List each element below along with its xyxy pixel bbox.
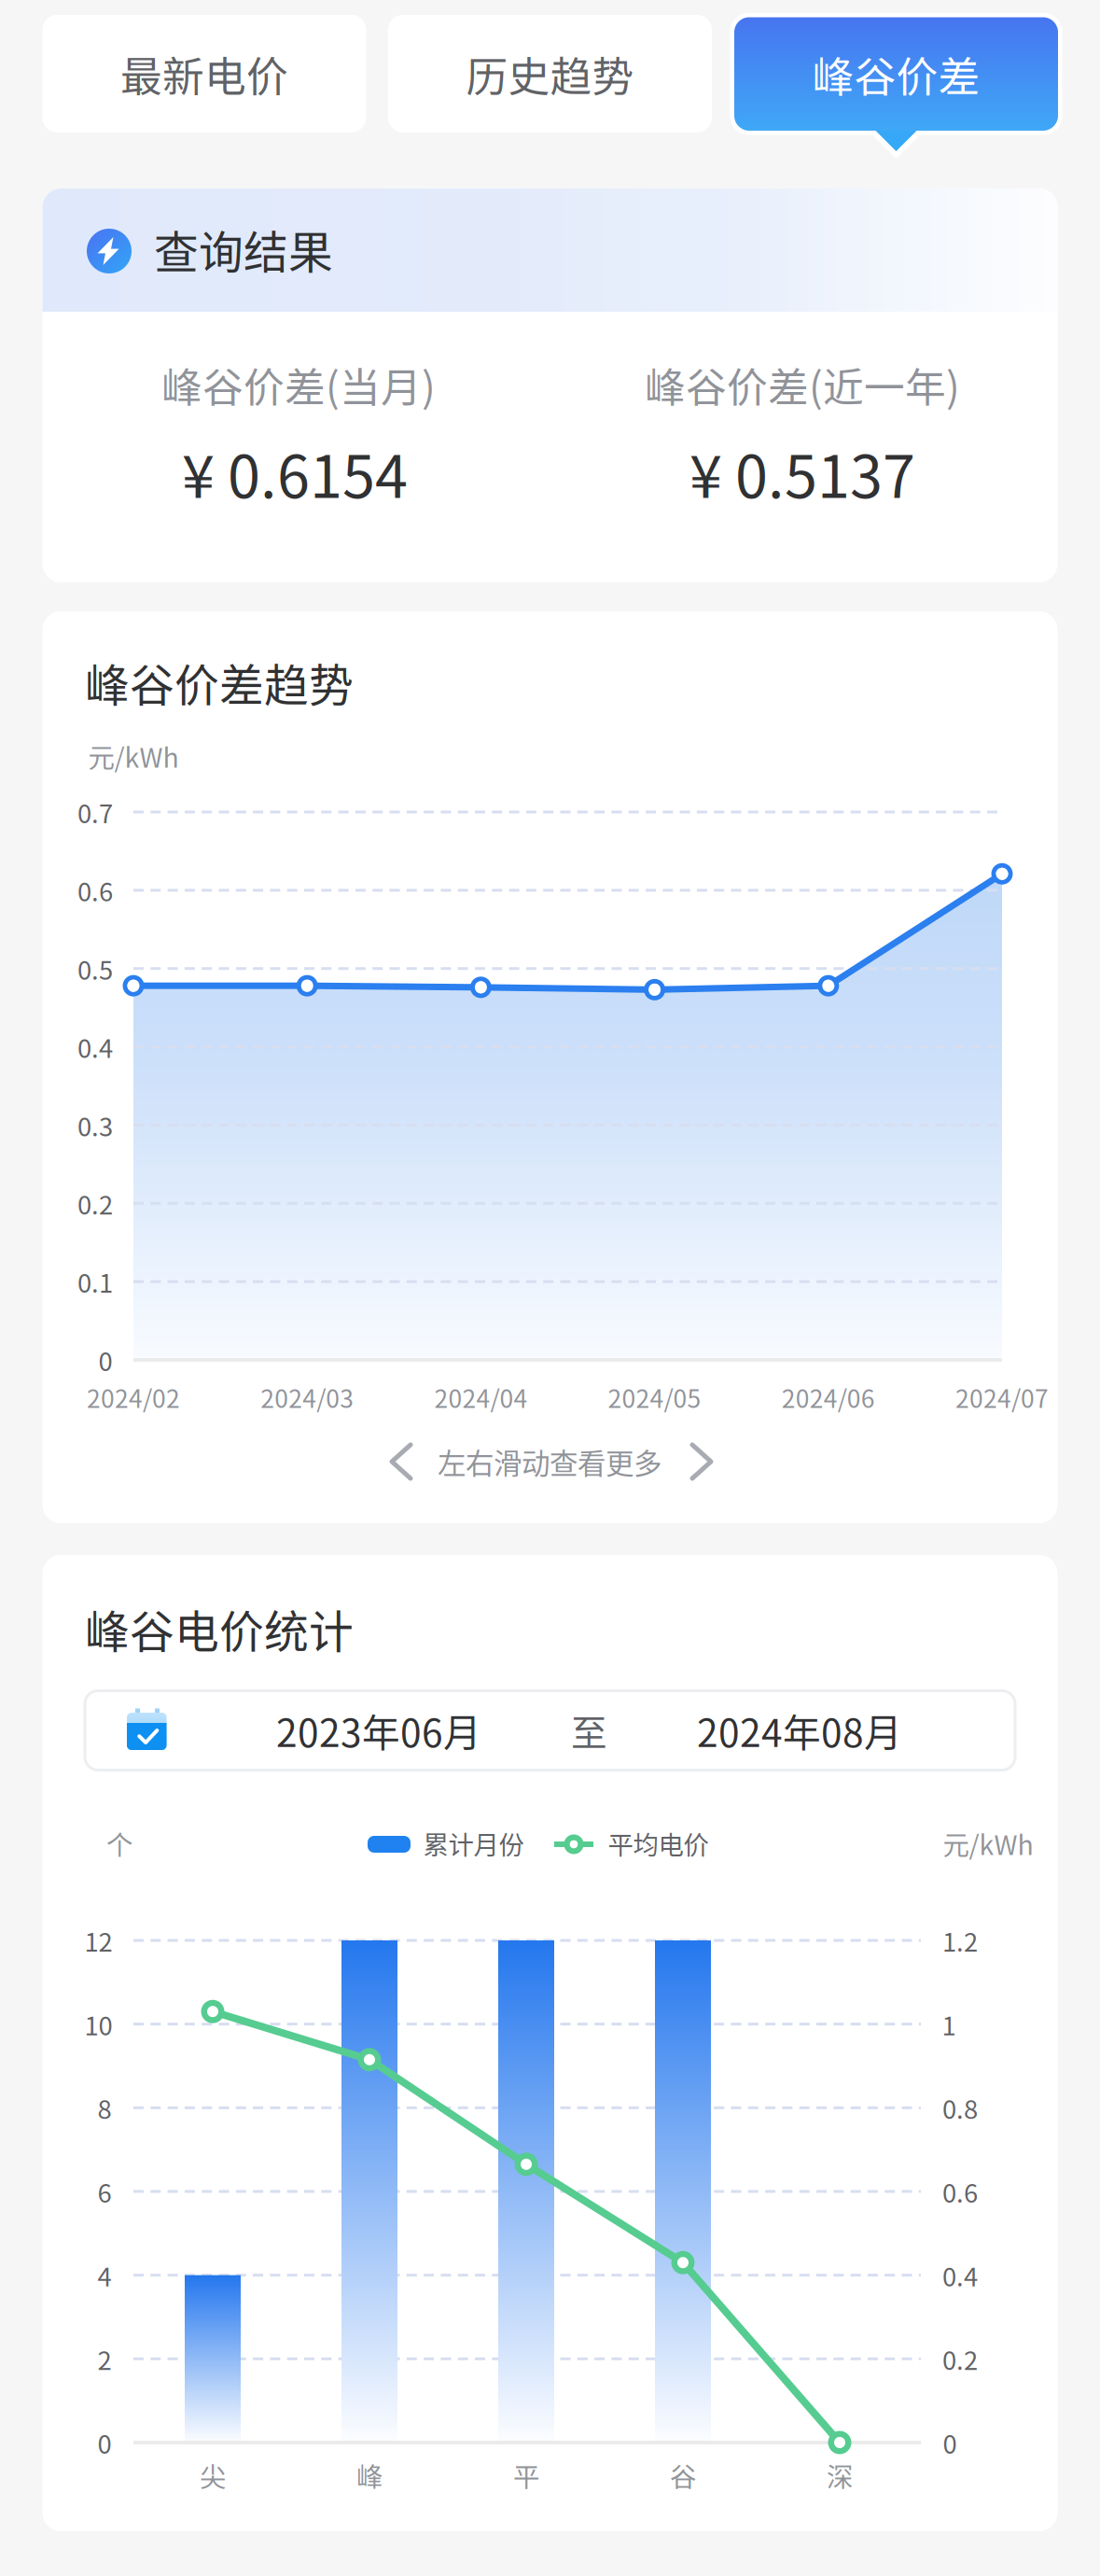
staticText: 2024/03 xyxy=(260,1379,354,1415)
staticText: 2024/07 xyxy=(955,1379,1049,1415)
button[interactable]: 历史趋势 xyxy=(0,0,1100,2576)
staticText: 查询结果 xyxy=(154,217,333,281)
staticText: ¥ 0.5137 xyxy=(689,430,915,515)
staticText: 0.6 xyxy=(77,872,113,909)
staticText: 1.2 xyxy=(942,1922,978,1959)
staticText: 2024/04 xyxy=(434,1379,528,1415)
button[interactable]: 最新电价 xyxy=(0,0,1100,2576)
staticText: 6 xyxy=(97,2173,111,2210)
staticText: 0.1 xyxy=(77,1263,113,1300)
staticText: 0.4 xyxy=(942,2257,978,2294)
staticText: 峰谷电价统计 xyxy=(85,1596,354,1661)
staticText: 元/kWh xyxy=(943,1824,1033,1863)
staticText: 0.7 xyxy=(77,793,113,830)
staticText: 0 xyxy=(98,1341,112,1378)
staticText: 0.6 xyxy=(942,2173,978,2210)
staticText: 0.3 xyxy=(77,1107,113,1144)
staticText: 个 xyxy=(106,1824,132,1863)
staticText: 元/kWh xyxy=(88,737,179,775)
staticText: 峰谷价差(当月) xyxy=(161,355,436,414)
staticText: 0 xyxy=(97,2424,111,2461)
staticText: 2 xyxy=(97,2340,111,2377)
staticText: 峰谷价差 xyxy=(812,44,980,104)
staticText: 峰谷价差趋势 xyxy=(85,650,354,714)
staticText: 4 xyxy=(97,2257,111,2294)
staticText: 最新电价 xyxy=(120,43,288,104)
staticText: 0.2 xyxy=(77,1185,113,1222)
staticText: 0.4 xyxy=(77,1028,113,1065)
staticText: 平 xyxy=(513,2456,539,2494)
staticText: 深 xyxy=(827,2456,853,2494)
button[interactable]: 峰谷价差 xyxy=(0,0,1100,2576)
staticText: 0.8 xyxy=(942,2089,978,2126)
staticText: 2024/02 xyxy=(87,1379,180,1415)
staticText: 2024年08月 xyxy=(697,1703,902,1758)
staticText: 2023年06月 xyxy=(276,1703,481,1758)
staticText: 左右滑动查看更多 xyxy=(438,1441,661,1482)
staticText: 10 xyxy=(84,2006,112,2043)
staticText: 谷 xyxy=(670,2456,696,2494)
staticText: 0 xyxy=(943,2424,957,2461)
staticText: 历史趋势 xyxy=(466,43,634,104)
staticText: 8 xyxy=(97,2089,111,2126)
staticText: 2024/05 xyxy=(608,1379,701,1415)
staticText: 2024/06 xyxy=(782,1379,875,1415)
staticText: 平均电价 xyxy=(608,1825,709,1862)
staticText: 1 xyxy=(942,2006,956,2043)
staticText: 0.2 xyxy=(942,2340,978,2377)
button[interactable]: 2023年06月 xyxy=(0,0,1100,2576)
staticText: 至 xyxy=(571,1704,607,1757)
button[interactable]: 左右滑动查看更多 xyxy=(0,0,1100,2576)
staticText: ¥ 0.6154 xyxy=(182,430,408,515)
staticText: 峰谷价差(近一年) xyxy=(645,355,960,414)
staticText: 12 xyxy=(84,1922,112,1959)
staticText: 尖 xyxy=(200,2456,226,2494)
staticText: 0.5 xyxy=(77,950,113,987)
staticText: 峰 xyxy=(356,2456,383,2494)
staticText: 累计月份 xyxy=(423,1825,524,1862)
